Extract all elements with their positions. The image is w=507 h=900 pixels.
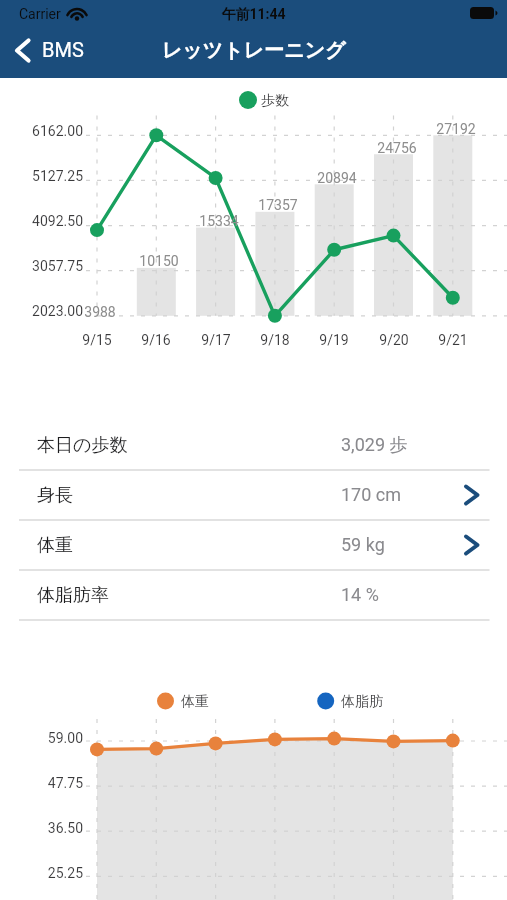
staticText: 59.00 — [10, 730, 83, 746]
staticText: 6162.00 — [10, 123, 83, 139]
button[interactable] — [8, 33, 98, 73]
staticText: 9/21 — [423, 332, 483, 348]
staticText: 47.75 — [10, 775, 83, 791]
staticText: 20894 — [297, 170, 377, 186]
staticText: 14 % — [341, 584, 379, 605]
staticText: 3,029 歩 — [341, 434, 408, 457]
staticText: 体重 — [37, 534, 73, 557]
staticText: 5127.25 — [10, 168, 83, 184]
button[interactable] — [0, 420, 507, 470]
staticText: 3057.75 — [10, 258, 83, 274]
staticText: 3988 — [60, 304, 140, 320]
staticText: 9/18 — [245, 332, 305, 348]
staticText: 2023.00 — [10, 303, 83, 319]
staticText: 9/19 — [304, 332, 364, 348]
staticText: 24756 — [357, 140, 437, 156]
staticText: 15334 — [179, 213, 259, 229]
staticText: 体脂肪 — [341, 693, 383, 711]
staticText: 本日の歩数 — [37, 434, 128, 457]
staticText: 体重 — [181, 693, 209, 711]
staticText: 体脂肪率 — [37, 584, 109, 607]
staticText: 4092.50 — [10, 213, 83, 229]
staticText: 9/15 — [67, 332, 127, 348]
staticText: 10150 — [119, 253, 199, 269]
staticText: 36.50 — [10, 820, 83, 836]
staticText: 17357 — [238, 197, 318, 213]
staticText: 9/17 — [186, 332, 246, 348]
staticText: 9/20 — [364, 332, 424, 348]
button[interactable]: BMS — [42, 38, 84, 61]
staticText: 身長 — [37, 484, 73, 507]
staticText: 59 kg — [341, 534, 385, 555]
button[interactable] — [0, 570, 507, 620]
button[interactable] — [0, 470, 507, 520]
staticText: 9/16 — [126, 332, 186, 348]
staticText: 25.25 — [10, 865, 83, 881]
staticText: 170 cm — [341, 484, 402, 505]
staticText: 午前11:44 — [0, 6, 507, 24]
staticText: Carrier — [19, 6, 61, 22]
staticText: 27192 — [416, 121, 496, 137]
button[interactable] — [0, 520, 507, 570]
staticText: 歩数 — [261, 92, 289, 110]
staticText: レッツトレーニング — [0, 38, 507, 63]
